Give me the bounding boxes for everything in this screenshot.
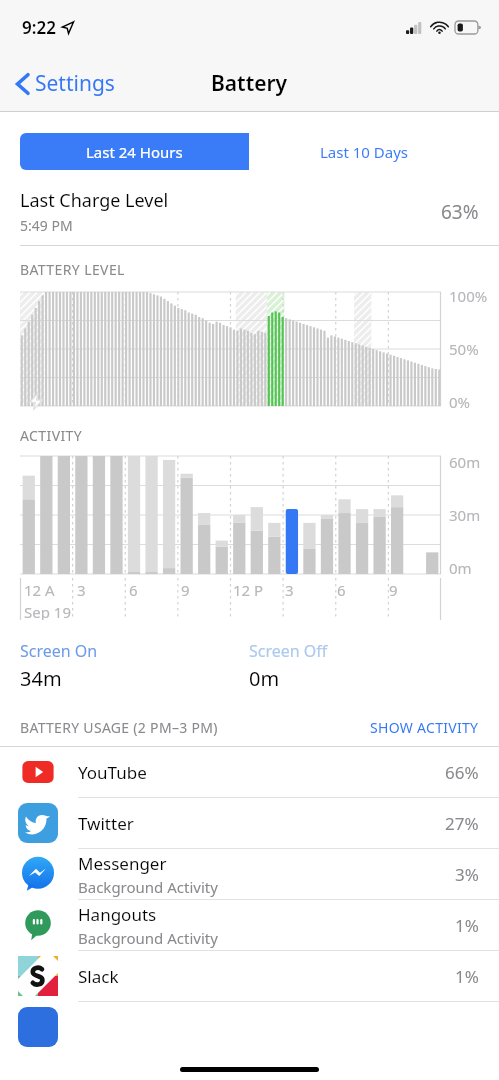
staticText: Background Activity bbox=[78, 928, 218, 948]
staticText: YouTube bbox=[78, 761, 147, 784]
staticText: 34m bbox=[20, 665, 62, 692]
button[interactable]: Last 24 Hours bbox=[20, 133, 249, 170]
staticText: 3% bbox=[455, 863, 479, 886]
button[interactable]: Hangouts bbox=[0, 900, 499, 950]
staticText: 63% bbox=[441, 199, 479, 225]
staticText: 66% bbox=[445, 761, 479, 784]
button[interactable]: Last 10 Days bbox=[249, 133, 479, 170]
staticText: ACTIVITY bbox=[20, 426, 83, 445]
staticText: 3 bbox=[285, 580, 294, 600]
staticText: Battery bbox=[211, 69, 288, 98]
staticText: Screen Off bbox=[249, 640, 328, 662]
staticText: 100% bbox=[449, 286, 488, 306]
button[interactable]: Settings bbox=[12, 63, 119, 104]
staticText: Messenger bbox=[78, 852, 167, 875]
staticText: 9 bbox=[389, 580, 398, 600]
staticText: 9:22 bbox=[22, 16, 56, 39]
staticText: Background Activity bbox=[78, 877, 218, 897]
staticText: 60m bbox=[449, 452, 481, 472]
staticText: 12 P bbox=[233, 580, 264, 600]
staticText: 12 A bbox=[24, 580, 55, 600]
staticText: Last 24 Hours bbox=[86, 142, 183, 162]
button[interactable]: Messenger bbox=[0, 849, 499, 899]
staticText: Screen On bbox=[20, 640, 98, 662]
staticText: 1% bbox=[455, 914, 479, 937]
staticText: 6 bbox=[337, 580, 346, 600]
staticText: 1% bbox=[455, 965, 479, 988]
staticText: 27% bbox=[445, 812, 479, 835]
staticText: SHOW ACTIVITY bbox=[370, 718, 479, 737]
staticText: 3 bbox=[77, 580, 86, 600]
staticText: Settings bbox=[35, 69, 115, 98]
staticText: Sep 19 bbox=[24, 602, 71, 620]
staticText: 0m bbox=[249, 665, 280, 692]
staticText: BATTERY USAGE (2 PM–3 PM) bbox=[20, 718, 370, 737]
button[interactable] bbox=[0, 1002, 499, 1052]
staticText: Last 10 Days bbox=[320, 142, 409, 162]
staticText: 5:49 PM bbox=[20, 216, 73, 235]
staticText: 50% bbox=[449, 339, 479, 359]
staticText: Slack bbox=[78, 965, 119, 988]
staticText: 30m bbox=[449, 505, 481, 525]
staticText: 6 bbox=[129, 580, 138, 600]
staticText: 9 bbox=[181, 580, 190, 600]
staticText: BATTERY LEVEL bbox=[20, 260, 125, 279]
staticText: Hangouts bbox=[78, 903, 157, 926]
staticText: Last Charge Level bbox=[20, 188, 169, 213]
button[interactable]: SHOW ACTIVITY bbox=[370, 718, 479, 737]
staticText: 0% bbox=[449, 392, 471, 412]
staticText: 0m bbox=[449, 558, 472, 578]
button[interactable]: Slack bbox=[0, 951, 499, 1001]
button[interactable]: YouTube bbox=[0, 747, 499, 797]
button[interactable]: Twitter bbox=[0, 798, 499, 848]
staticText: Twitter bbox=[78, 812, 134, 835]
